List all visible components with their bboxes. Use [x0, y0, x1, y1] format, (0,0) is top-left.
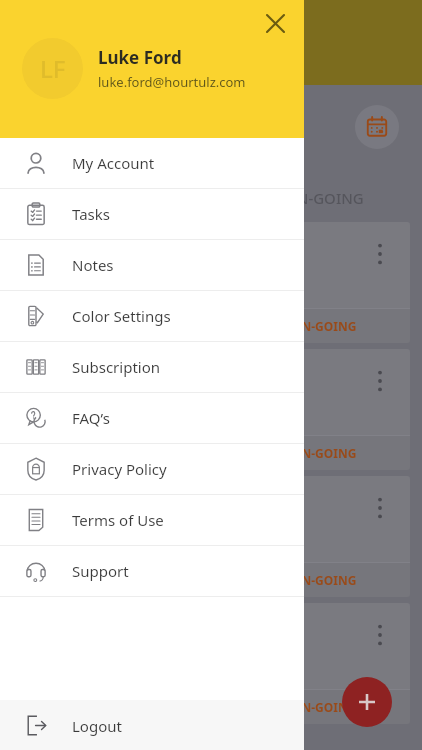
staticText: ON-GOING	[292, 572, 357, 588]
staticText: ON-GOING	[292, 699, 357, 715]
staticText: Logout	[72, 716, 122, 736]
button[interactable]: Close	[258, 6, 292, 40]
staticText: LF	[40, 52, 66, 85]
staticText: Luke Ford	[98, 46, 182, 69]
button[interactable]: Privacy Policy	[0, 444, 304, 494]
button[interactable]: Add	[342, 677, 392, 727]
button[interactable]: Support	[0, 546, 304, 596]
button[interactable]: Calendar	[355, 105, 399, 149]
button[interactable]: ON-GOING	[12, 349, 410, 470]
staticText: Terms of Use	[72, 510, 164, 530]
staticText: Privacy Policy	[72, 459, 167, 479]
staticText: Color Settings	[72, 306, 171, 326]
staticText: Support	[72, 561, 129, 581]
button[interactable]: Color Settings	[0, 291, 304, 341]
button[interactable]: ON-GOING	[12, 603, 410, 724]
button[interactable]: Tasks	[0, 189, 304, 239]
button[interactable]: Subscription	[0, 342, 304, 392]
staticText: Notes	[72, 255, 114, 275]
staticText: ON-GOING	[292, 445, 357, 461]
staticText: Tasks	[72, 204, 110, 224]
staticText: ON-GOING	[292, 318, 357, 334]
staticText: ON-GOING	[285, 188, 364, 208]
button[interactable]: ON-GOING	[12, 222, 410, 343]
button[interactable]: ON-GOING	[12, 476, 410, 597]
staticText: luke.ford@hourtulz.com	[98, 73, 246, 91]
staticText: Subscription	[72, 357, 161, 377]
staticText: FAQ’s	[72, 408, 110, 428]
button[interactable]: Logout	[0, 700, 304, 750]
button[interactable]: Terms of Use	[0, 495, 304, 545]
button[interactable]: My Account	[0, 138, 304, 188]
button[interactable]: Notes	[0, 240, 304, 290]
button[interactable]: FAQ’s	[0, 393, 304, 443]
staticText: My Account	[72, 153, 155, 173]
